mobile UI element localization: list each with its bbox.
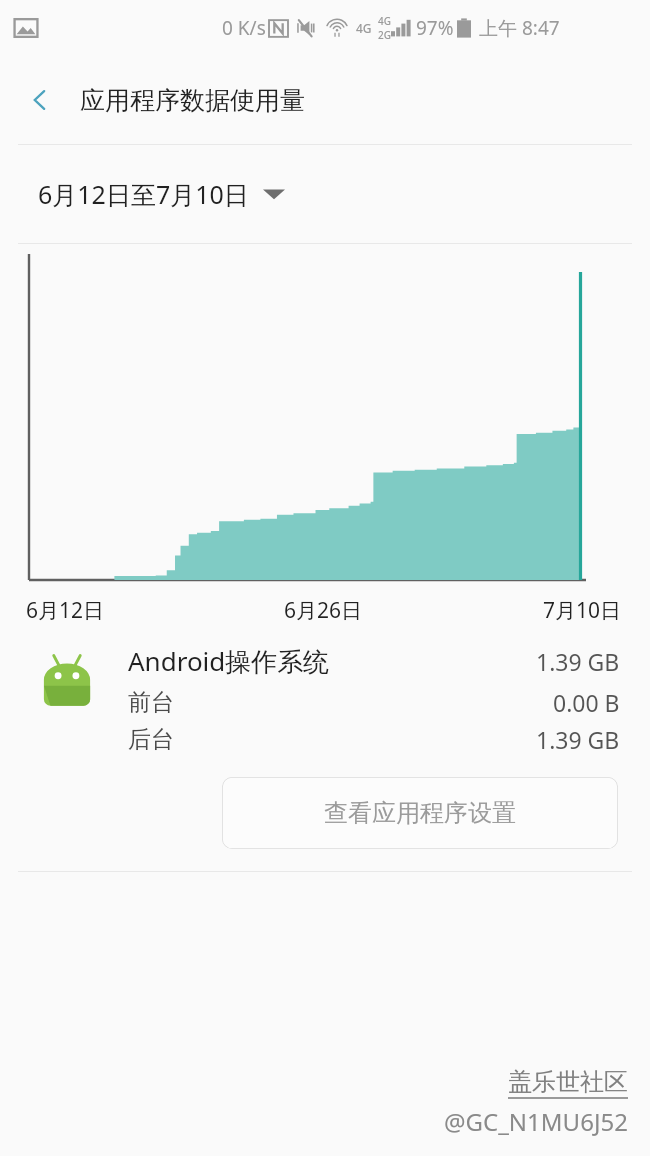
staticText: 6月12日	[26, 596, 105, 625]
staticText: 6月12日至7月10日	[38, 177, 249, 211]
staticText: 2G	[378, 28, 391, 42]
staticText: 4G	[378, 14, 391, 28]
staticText: 盖乐世社区	[508, 1067, 628, 1097]
staticText: Android操作系统	[128, 643, 330, 679]
staticText: @GC_N1MU6J52	[444, 1105, 628, 1138]
button[interactable]: Android操作系统	[0, 643, 650, 755]
staticText: 0.00 B	[553, 687, 620, 718]
staticText: 上午 8:47	[479, 15, 560, 41]
button[interactable]: Back	[12, 72, 68, 128]
button[interactable]: 查看应用程序设置	[222, 777, 618, 849]
staticText: 1.39 GB	[536, 646, 620, 677]
button[interactable]: 6月12日至7月10日	[0, 145, 650, 243]
staticText: 4G	[356, 20, 372, 36]
staticText: 0 K/s	[222, 15, 266, 41]
staticText: 7月10日	[543, 596, 622, 625]
staticText: 6月26日	[284, 596, 363, 625]
staticText: 前台	[128, 688, 174, 717]
staticText: 1.39 GB	[536, 724, 620, 755]
staticText: 后台	[128, 725, 174, 754]
staticText: 97%	[416, 15, 454, 41]
staticText: 查看应用程序设置	[324, 798, 516, 828]
staticText: 应用程序数据使用量	[80, 85, 305, 116]
